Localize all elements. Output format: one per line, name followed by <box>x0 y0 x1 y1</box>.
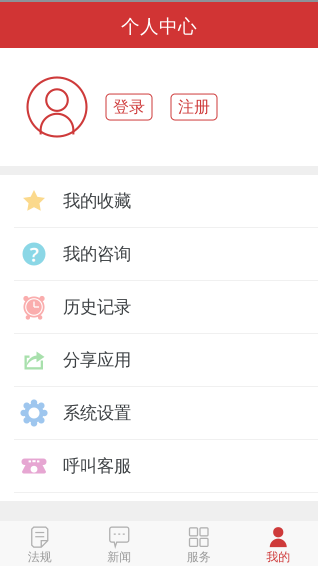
button[interactable]: 呼叫客服 <box>0 440 318 493</box>
button[interactable]: 登录 <box>106 94 152 120</box>
staticText: 系统设置 <box>63 402 131 424</box>
button[interactable]: 历史记录 <box>0 281 318 334</box>
button[interactable]: 法规 <box>0 520 79 566</box>
staticText: 我的咨询 <box>63 243 131 265</box>
staticText: 服务 <box>187 550 211 564</box>
staticText: 注册 <box>178 97 210 117</box>
button[interactable]: 我的 <box>238 520 318 566</box>
button[interactable]: 注册 <box>171 94 217 120</box>
staticText: 呼叫客服 <box>63 455 131 477</box>
button[interactable]: 新闻 <box>79 520 159 566</box>
staticText: ? <box>29 241 38 267</box>
staticText: 我的 <box>266 550 290 564</box>
staticText: 分享应用 <box>63 349 131 371</box>
button[interactable]: 我的收藏 <box>0 175 318 228</box>
staticText: 法规 <box>28 550 52 564</box>
button[interactable]: 分享应用 <box>0 334 318 387</box>
staticText: 个人中心 <box>121 15 197 38</box>
staticText: 登录 <box>113 97 145 117</box>
button[interactable]: 服务 <box>159 520 238 566</box>
button[interactable]: ? <box>0 228 318 281</box>
button[interactable]: 系统设置 <box>0 387 318 440</box>
staticText: 历史记录 <box>63 296 131 318</box>
staticText: 我的收藏 <box>63 190 131 212</box>
staticText: 新闻 <box>107 550 131 564</box>
